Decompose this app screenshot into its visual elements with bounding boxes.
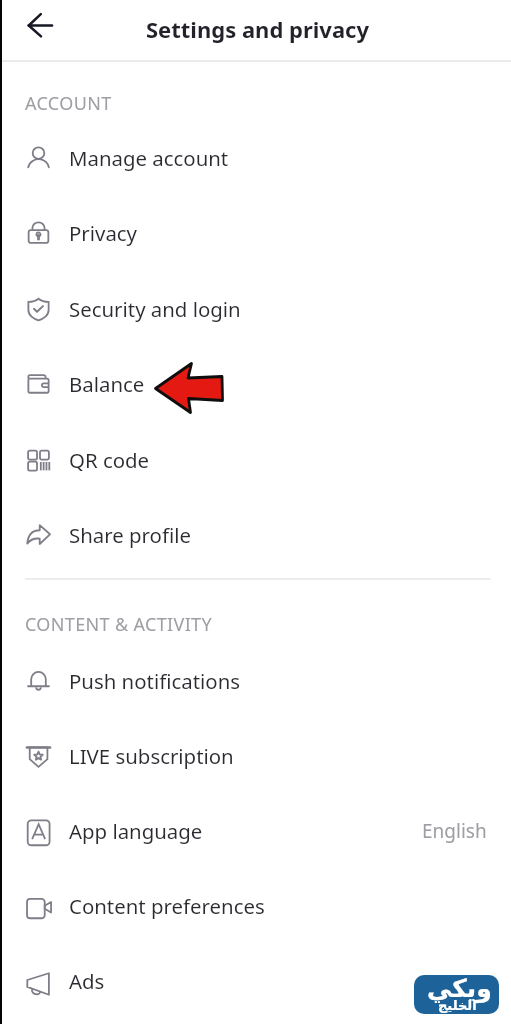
button[interactable]: LIVE subscription — [0, 726, 511, 786]
button[interactable]: Ads — [0, 951, 511, 1011]
staticText: English — [422, 818, 487, 844]
staticText: Settings and privacy — [146, 14, 369, 44]
button[interactable]: Back — [16, 3, 62, 49]
staticText: Share profile — [69, 521, 191, 549]
button[interactable]: QR code — [0, 430, 511, 490]
staticText: Ads — [69, 967, 105, 995]
button[interactable]: Privacy — [0, 203, 511, 263]
staticText: Push notifications — [69, 667, 240, 695]
staticText: App language — [69, 817, 203, 845]
button[interactable]: App language — [0, 801, 511, 861]
staticText: ويكي — [427, 975, 492, 1003]
staticText: Privacy — [69, 219, 138, 247]
button[interactable]: Share profile — [0, 505, 511, 565]
button[interactable]: Content preferences — [0, 876, 511, 936]
staticText: LIVE subscription — [69, 742, 234, 770]
button[interactable]: Security and login — [0, 279, 511, 339]
staticText: CONTENT & ACTIVITY — [25, 612, 213, 637]
button[interactable]: Manage account — [0, 128, 511, 188]
staticText: ACCOUNT — [25, 91, 112, 116]
staticText: Balance — [69, 370, 145, 398]
staticText: Manage account — [69, 144, 229, 172]
staticText: QR code — [69, 446, 150, 474]
button[interactable]: Balance — [0, 354, 511, 414]
button[interactable]: Push notifications — [0, 651, 511, 711]
staticText: Security and login — [69, 295, 241, 323]
staticText: الخليج — [438, 998, 477, 1013]
staticText: Content preferences — [69, 892, 265, 920]
